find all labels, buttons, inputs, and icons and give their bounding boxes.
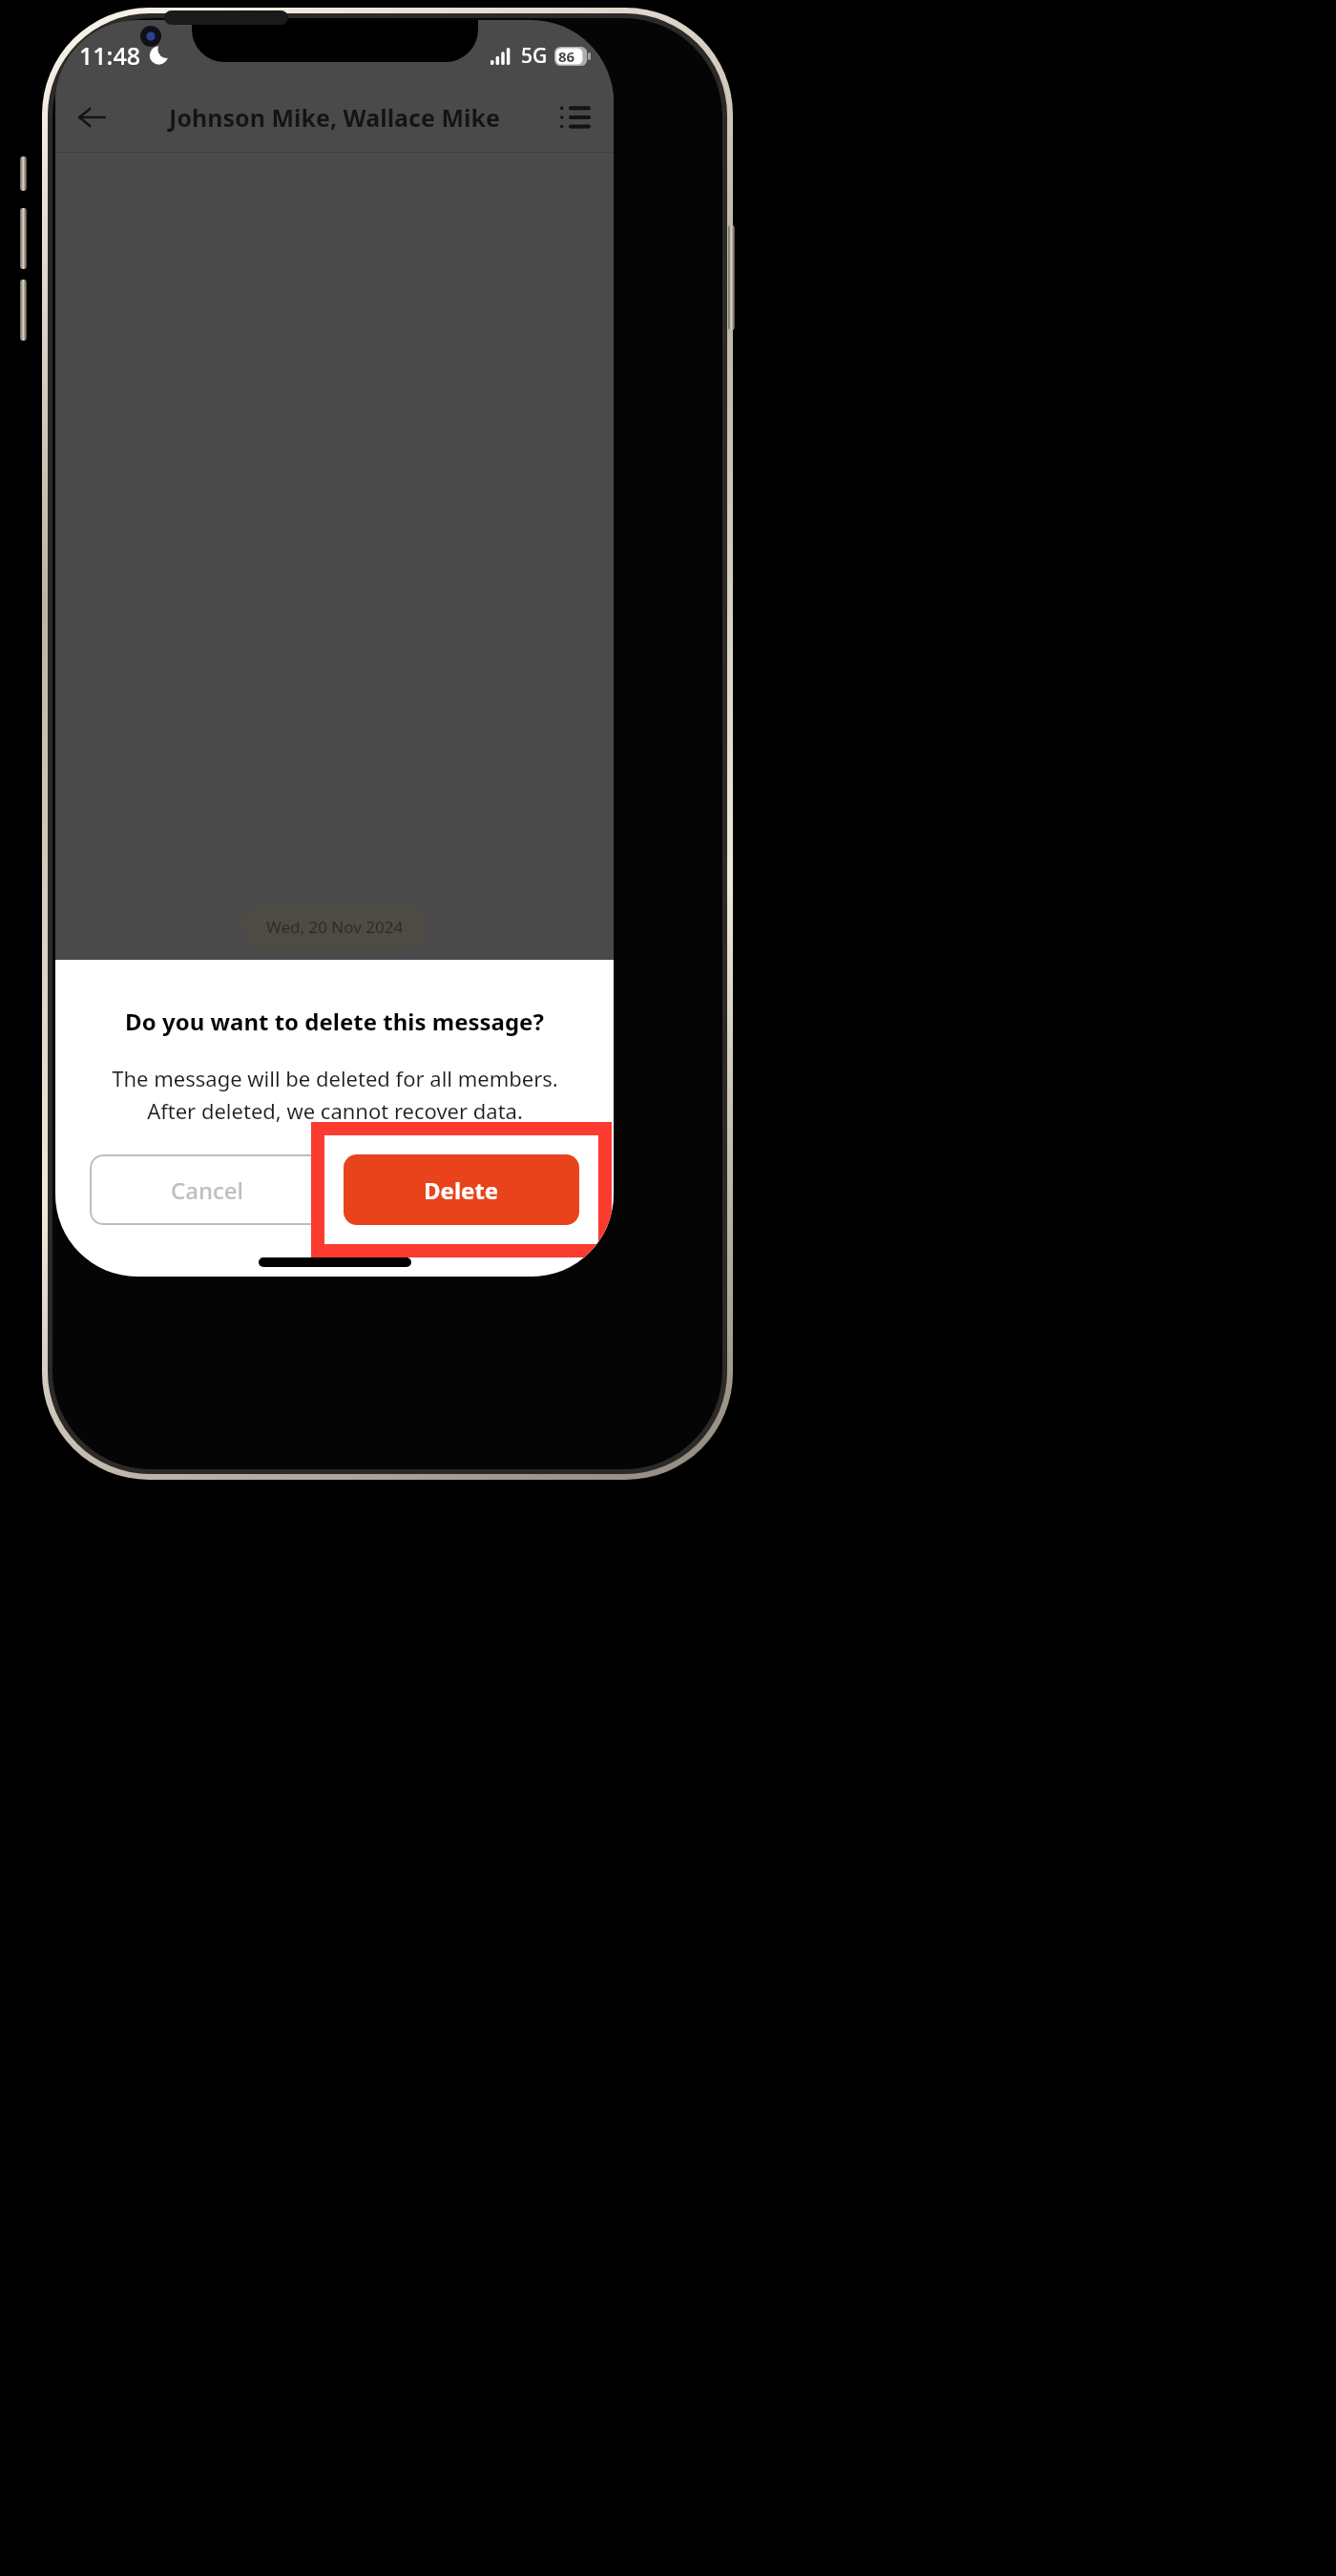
staticText: 5G — [521, 42, 548, 70]
staticText: Delete — [424, 1174, 499, 1206]
staticText: Johnson Mike, Wallace Mike — [169, 101, 500, 134]
button[interactable]: Cancel — [90, 1154, 324, 1225]
staticText: Cancel — [171, 1174, 244, 1206]
button[interactable]: Back — [67, 93, 116, 142]
button[interactable]: Delete — [344, 1154, 579, 1225]
staticText: 86 — [558, 47, 575, 66]
staticText: The message will be deleted for all memb… — [112, 1064, 558, 1126]
staticText: Do you want to delete this message? — [125, 1006, 544, 1037]
staticText: 11:48 — [79, 39, 141, 72]
staticText: Wed, 20 Nov 2024 — [266, 916, 404, 938]
button[interactable]: Menu — [551, 93, 600, 142]
